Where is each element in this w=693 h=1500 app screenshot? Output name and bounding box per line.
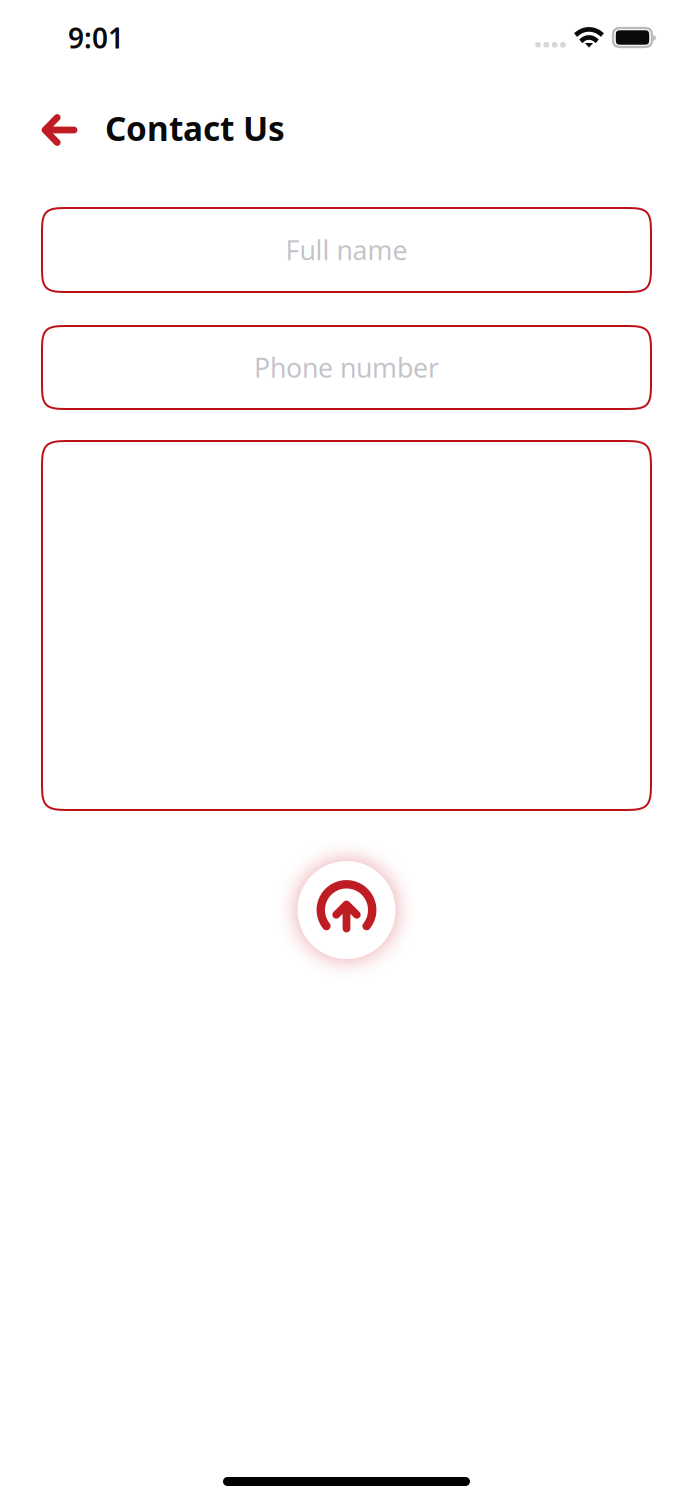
staticText: Full name [285,232,407,268]
button[interactable]: Message [0,441,693,810]
button[interactable]: Submit [286,850,406,970]
staticText: Phone number [254,350,439,385]
button[interactable]: Back [0,96,105,159]
staticText: Contact Us [105,106,285,150]
staticText: 9:01 [68,19,124,56]
button[interactable]: Phone number [0,326,693,409]
button[interactable]: Full name [0,208,693,292]
